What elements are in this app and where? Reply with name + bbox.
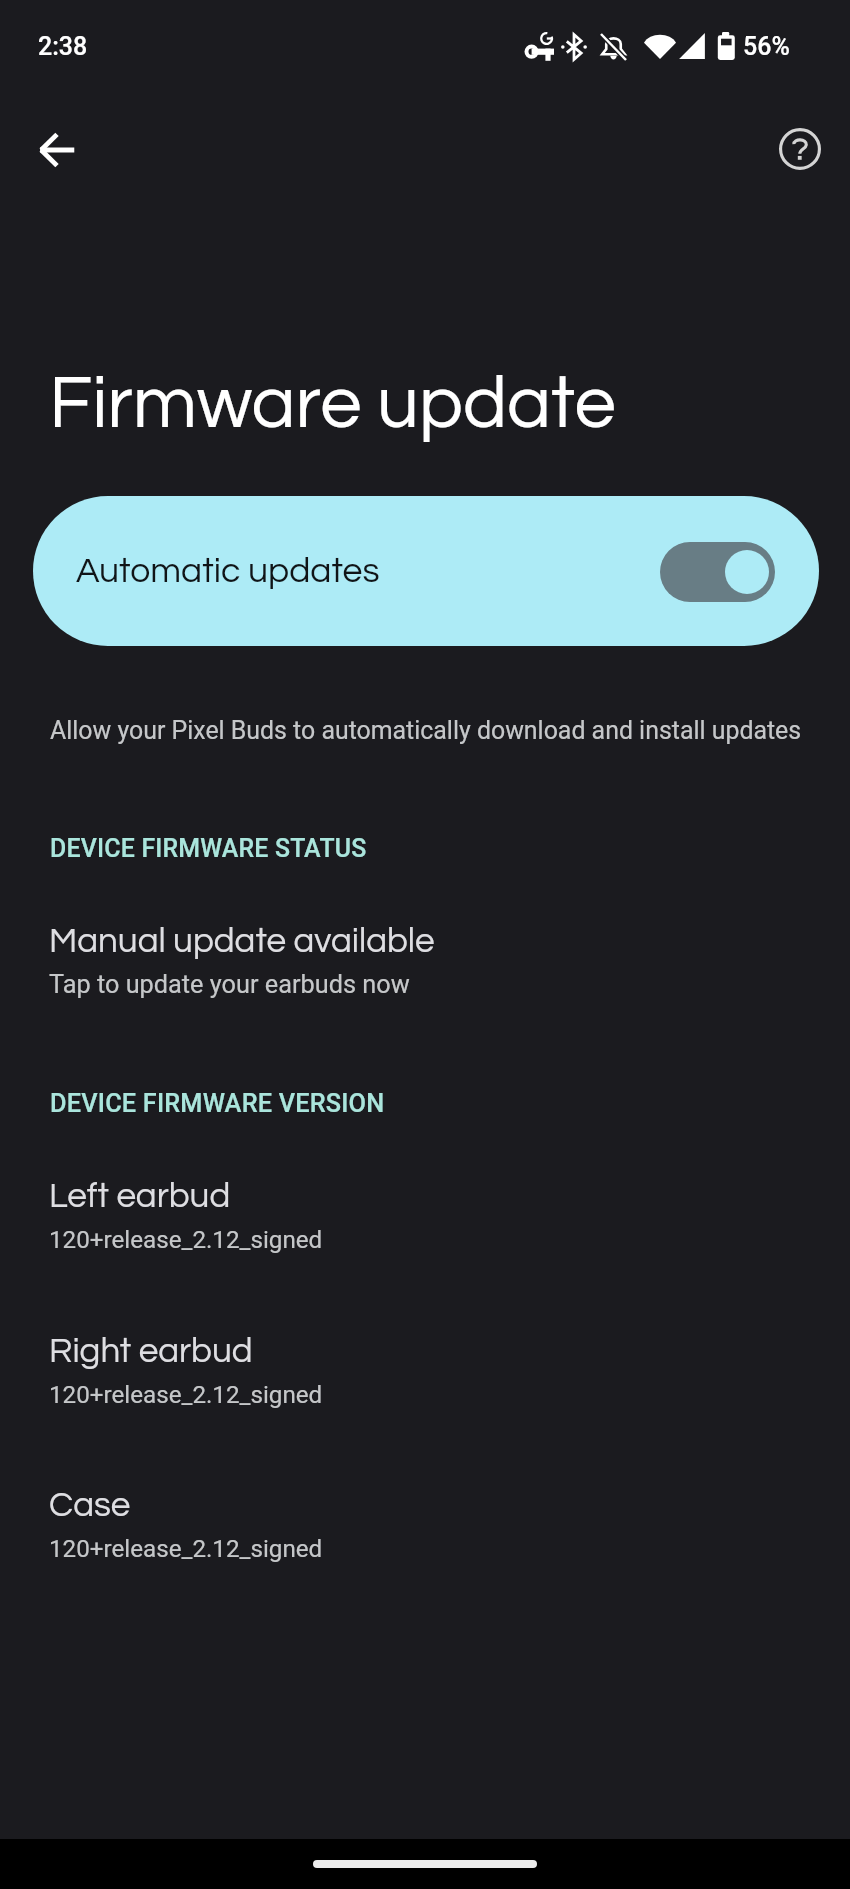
button[interactable] — [0, 1324, 850, 1414]
staticText: Case — [49, 1487, 131, 1523]
staticText: 2:38 — [38, 32, 88, 61]
staticText: 120+release_2.12_signed — [49, 1535, 323, 1563]
staticText: 120+release_2.12_signed — [49, 1381, 323, 1409]
staticText: Manual update available — [49, 923, 435, 959]
staticText: Left earbud — [49, 1178, 231, 1214]
button[interactable]: Help and feedback — [757, 106, 843, 192]
staticText: DEVICE FIRMWARE STATUS — [50, 834, 367, 863]
button[interactable] — [0, 1169, 850, 1259]
staticText: Automatic updates — [76, 553, 380, 590]
staticText: Right earbud — [49, 1333, 253, 1369]
button[interactable]: Automatic updates — [33, 496, 819, 646]
button[interactable] — [0, 1478, 850, 1568]
staticText: Tap to update your earbuds now — [49, 970, 410, 1000]
staticText: Allow your Pixel Buds to automatically d… — [50, 716, 802, 745]
staticText: 56% — [743, 32, 790, 61]
staticText: 120+release_2.12_signed — [49, 1226, 323, 1254]
button[interactable]: Navigate up — [14, 107, 100, 193]
button[interactable] — [0, 914, 850, 1004]
staticText: Firmware update — [49, 366, 616, 442]
staticText: DEVICE FIRMWARE VERSION — [50, 1089, 385, 1119]
